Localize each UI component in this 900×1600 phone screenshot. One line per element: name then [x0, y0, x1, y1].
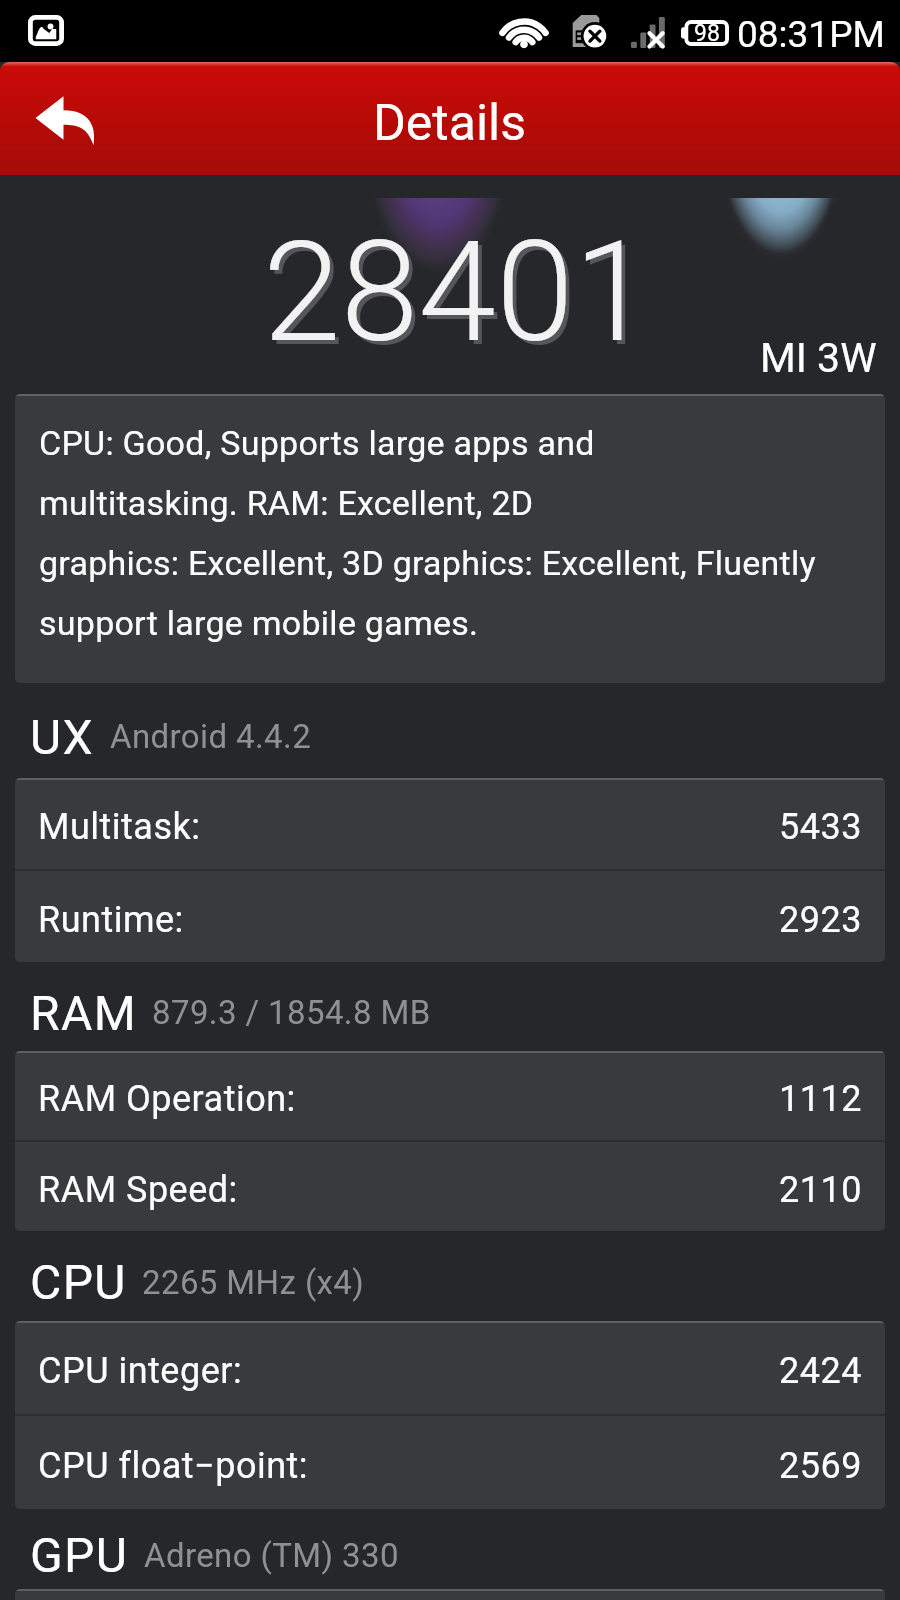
staticText: 1112: [779, 1078, 862, 1120]
staticText: UX: [30, 709, 95, 765]
button[interactable]: Runtime:: [15, 871, 885, 962]
staticText: 08:31PM: [737, 13, 885, 56]
staticText: Runtime:: [38, 899, 184, 941]
staticText: CPU float−point:: [38, 1445, 309, 1487]
button[interactable]: RAM Operation:: [15, 1051, 885, 1140]
staticText: CPU integer:: [38, 1350, 243, 1392]
button[interactable]: 2D graphics:: [15, 1589, 885, 1600]
staticText: 2265 MHz (x4): [142, 1263, 365, 1302]
staticText: Multitask:: [38, 806, 201, 848]
staticText: Android 4.4.2: [110, 717, 312, 756]
staticText: 2923: [779, 899, 862, 941]
staticText: 2569: [779, 1445, 862, 1487]
staticText: GPU: [30, 1527, 129, 1583]
staticText: 879.3 / 1854.8 MB: [152, 993, 431, 1032]
staticText: Details: [373, 94, 527, 153]
staticText: 2110: [779, 1169, 862, 1211]
staticText: Adreno (TM) 330: [144, 1536, 399, 1575]
button[interactable]: CPU float−point:: [15, 1416, 885, 1509]
button[interactable]: RAM Speed:: [15, 1142, 885, 1231]
staticText: RAM: [30, 985, 137, 1041]
staticText: RAM Operation:: [38, 1078, 296, 1120]
staticText: MI 3W: [760, 334, 877, 382]
staticText: 98: [694, 20, 720, 46]
staticText: 5433: [779, 806, 862, 848]
staticText: 28401: [263, 210, 652, 374]
staticText: CPU: Good, Supports large apps and multi…: [39, 423, 816, 643]
button[interactable]: Multitask:: [15, 778, 885, 869]
staticText: 2424: [779, 1350, 862, 1392]
button[interactable]: CPU integer:: [15, 1321, 885, 1414]
staticText: CPU: [30, 1254, 127, 1310]
button[interactable]: Back: [32, 93, 102, 148]
staticText: RAM Speed:: [38, 1169, 238, 1211]
staticText: 28401: [267, 214, 656, 378]
